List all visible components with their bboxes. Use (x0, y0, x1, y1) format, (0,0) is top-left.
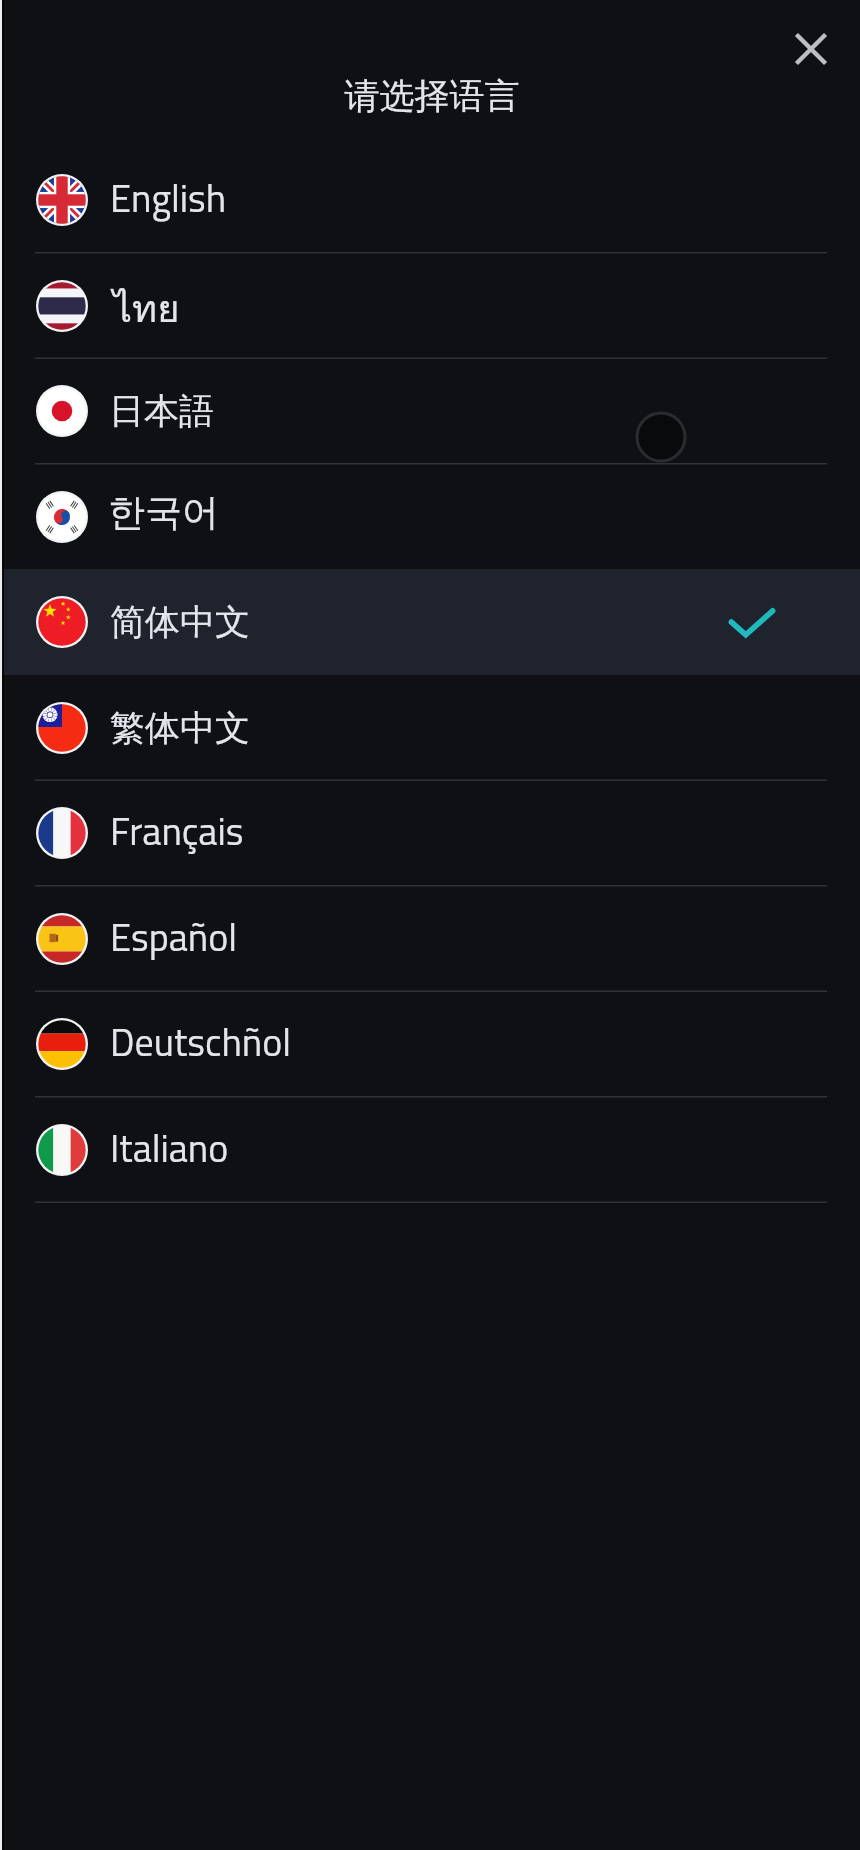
staticText: Español (110, 908, 237, 966)
staticText: 请选择语言 (2, 74, 860, 118)
button[interactable]: Deutschñol (0, 991, 860, 1097)
button[interactable]: Español (0, 886, 860, 992)
button[interactable]: 日本語 (0, 358, 860, 464)
staticText: 한국어 (108, 489, 219, 536)
staticText: Italiano (110, 1119, 229, 1177)
button[interactable]: Français (0, 780, 860, 886)
staticText: Deutschñol (110, 1013, 292, 1071)
staticText: Français (110, 802, 244, 860)
staticText: English (110, 169, 227, 227)
button[interactable]: Italiano (0, 1097, 860, 1203)
staticText: ไทย (113, 278, 180, 338)
button[interactable]: ไทย (0, 253, 860, 359)
button[interactable]: Close (775, 13, 847, 85)
staticText: 简体中文 (110, 600, 250, 644)
button[interactable]: English (0, 147, 860, 253)
staticText: 日本語 (109, 389, 214, 433)
button[interactable]: 繁体中文 (0, 675, 860, 781)
button[interactable]: 简体中文 (0, 569, 860, 675)
staticText: 繁体中文 (110, 706, 250, 750)
button[interactable]: 한국어 (0, 464, 860, 570)
